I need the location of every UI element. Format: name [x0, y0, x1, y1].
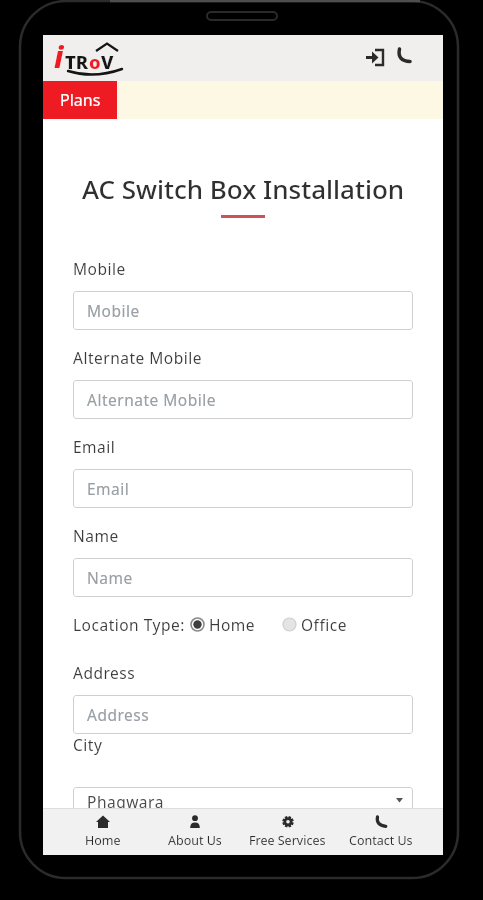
staticText: AC Switch Box Installation	[73, 171, 413, 206]
staticText: Office	[301, 614, 347, 635]
button[interactable]: About Us	[149, 808, 241, 849]
staticText: Contact Us	[349, 832, 413, 849]
staticText: V	[101, 49, 114, 74]
button[interactable]: Mobile	[73, 291, 413, 330]
staticText: TR	[65, 49, 89, 74]
staticText: Name	[73, 525, 119, 546]
button[interactable]: Free Services	[241, 808, 334, 849]
staticText: Alternate Mobile	[87, 389, 216, 410]
staticText: City	[73, 734, 103, 755]
button[interactable]	[361, 46, 393, 68]
button[interactable]	[395, 47, 419, 67]
staticText: o	[89, 49, 101, 74]
staticText: Address	[87, 704, 150, 725]
staticText: Alternate Mobile	[73, 347, 202, 368]
button[interactable]	[190, 617, 205, 632]
staticText: Name	[87, 567, 133, 588]
button[interactable]: Contact Us	[334, 808, 427, 849]
staticText: Home	[85, 832, 121, 849]
staticText: Free Services	[249, 832, 326, 849]
staticText: Email	[73, 436, 116, 457]
staticText: i	[54, 36, 64, 77]
button[interactable]: Plans	[43, 81, 117, 119]
button[interactable]	[282, 617, 297, 632]
button[interactable]: Alternate Mobile	[73, 380, 413, 419]
staticText: Email	[87, 478, 130, 499]
staticText: Plans	[60, 89, 101, 111]
staticText: Location Type:	[73, 614, 185, 635]
button[interactable]: Address	[73, 695, 413, 734]
button[interactable]: i	[54, 36, 114, 77]
button[interactable]: Email	[73, 469, 413, 508]
staticText: Address	[73, 662, 136, 683]
staticText: Mobile	[73, 258, 126, 279]
button[interactable]: Name	[73, 558, 413, 597]
staticText: About Us	[168, 832, 222, 849]
button[interactable]: Phagwara	[73, 787, 413, 808]
staticText: Phagwara	[87, 791, 164, 808]
button[interactable]: Home	[57, 808, 149, 849]
staticText: Mobile	[87, 300, 140, 321]
staticText: Home	[209, 614, 256, 635]
